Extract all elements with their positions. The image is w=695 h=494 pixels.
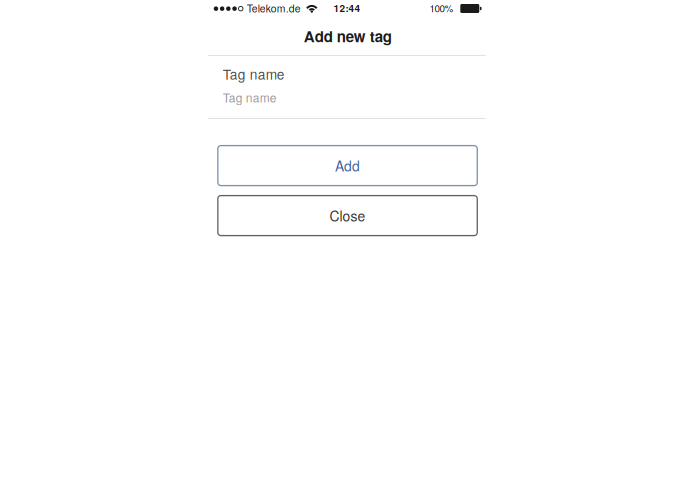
- textField[interactable]: Tag name: [208, 55, 486, 119]
- staticText: Tag name: [223, 64, 285, 84]
- staticText: Telekom.de: [247, 0, 301, 15]
- staticText: 12:44: [333, 1, 360, 15]
- staticText: Close: [329, 206, 365, 226]
- staticText: 100%: [429, 1, 453, 15]
- staticText: Tag name: [223, 89, 277, 106]
- button[interactable]: Add: [218, 146, 477, 186]
- staticText: Add: [335, 156, 360, 176]
- button[interactable]: Tag name: [208, 55, 486, 119]
- staticText: Add new tag: [304, 25, 392, 47]
- button[interactable]: Close: [218, 196, 477, 236]
